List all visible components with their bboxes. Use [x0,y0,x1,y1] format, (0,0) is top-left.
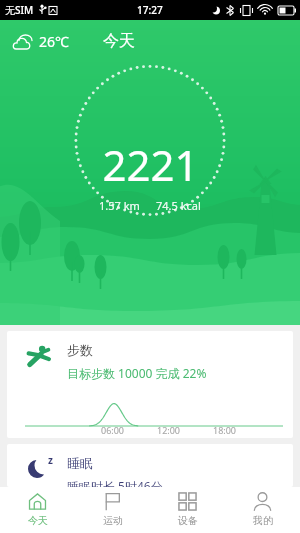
staticText: 目标步数 10000 完成 22% [67,365,207,381]
button[interactable]: 运动 [75,487,150,533]
staticText: 无SIM [5,3,34,17]
staticText: 步数 [67,342,93,358]
staticText: 12:00 [157,424,181,436]
staticText: 今天 [28,514,48,527]
button[interactable]: 26℃ [10,28,73,55]
button[interactable]: 今天 [0,487,75,533]
staticText: 26℃ [39,32,69,51]
staticText: 74.5 kcal [156,198,201,213]
button[interactable]: 设备 [150,487,225,533]
staticText: 运动 [103,514,123,527]
staticText: 17:27 [137,3,163,17]
staticText: 我的 [253,514,273,527]
staticText: 设备 [178,514,198,527]
staticText: z [48,453,53,467]
button[interactable]: z [7,444,293,487]
button[interactable]: 我的 [225,487,300,533]
staticText: 18:00 [213,424,237,436]
staticText: 睡眠 [67,455,93,471]
staticText: 2221 [102,136,199,193]
staticText: 今天 [103,31,135,51]
staticText: 睡眠时长 5时46分 [67,478,163,487]
button[interactable]: 步数 [7,331,293,438]
staticText: 1.57 km [99,198,140,213]
staticText: 06:00 [101,424,125,436]
